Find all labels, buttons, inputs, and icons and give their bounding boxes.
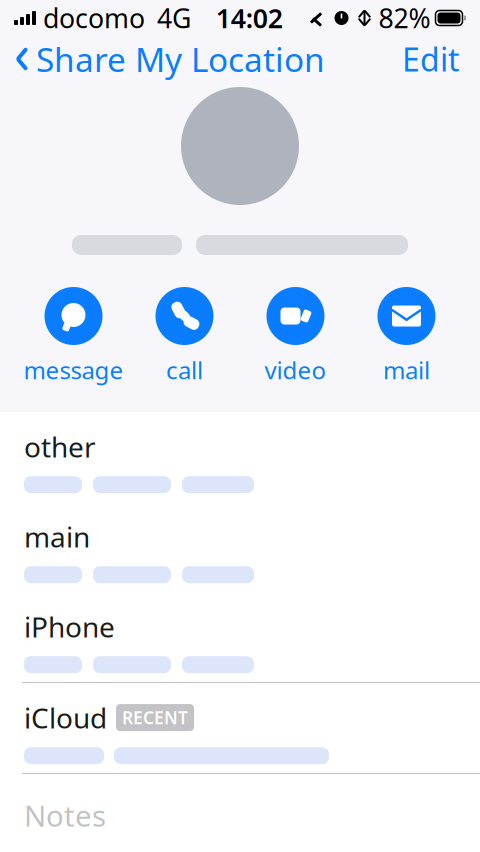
button[interactable]: Notes (0, 774, 480, 850)
button[interactable]: video (240, 287, 351, 386)
staticText: iPhone (24, 608, 115, 645)
button[interactable]: Share My Location (0, 31, 339, 87)
staticText: 14:02 (216, 0, 283, 36)
staticText: video (264, 354, 326, 386)
staticText: message (23, 354, 123, 386)
staticText: docomo (43, 0, 145, 36)
staticText: Edit (402, 38, 460, 80)
staticText: mail (383, 354, 430, 386)
staticText: Share My Location (36, 37, 325, 81)
button[interactable]: message (18, 287, 129, 386)
button[interactable]: main (0, 502, 480, 592)
staticText: Notes (24, 796, 106, 835)
staticText: 4G (157, 0, 191, 36)
button[interactable]: mail (351, 287, 462, 386)
button[interactable]: iPhone (0, 592, 480, 682)
staticText: other (24, 428, 96, 465)
button[interactable]: other (0, 412, 480, 502)
staticText: call (166, 354, 203, 386)
button[interactable]: Edit (382, 32, 480, 86)
button[interactable]: iCloud (0, 683, 480, 773)
staticText: RECENT (122, 706, 188, 729)
staticText: main (24, 518, 90, 555)
button[interactable]: call (129, 287, 240, 386)
staticText: 82% (378, 0, 430, 36)
staticText: iCloud (24, 699, 107, 736)
